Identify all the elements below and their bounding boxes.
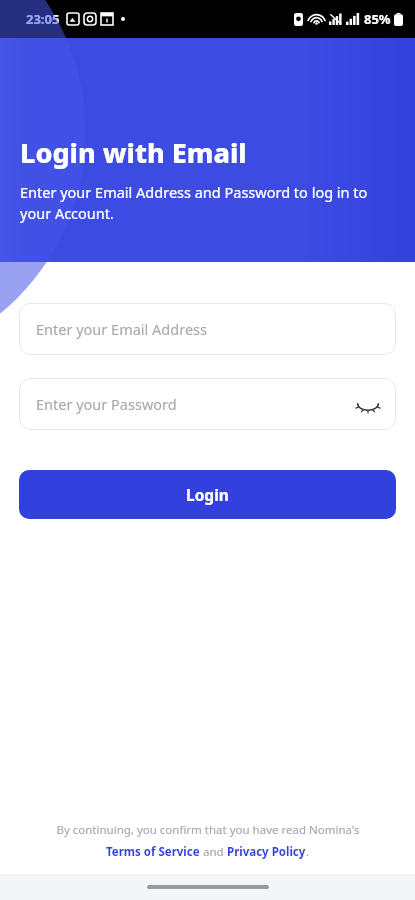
staticText: Privacy Policy (227, 844, 306, 860)
button[interactable]: Privacy Policy (227, 844, 306, 860)
staticText: By continuing, you confirm that you have… (56, 822, 360, 838)
button[interactable]: Enter your Password (19, 378, 396, 430)
button[interactable]: Terms of Service (106, 844, 200, 860)
button[interactable]: Login (19, 470, 396, 519)
staticText: Login with Email (20, 134, 247, 171)
button[interactable]: Enter your Email Address (19, 303, 396, 355)
staticText: Enter your Password (36, 394, 177, 414)
button[interactable]: Show password (354, 390, 382, 418)
staticText: . (306, 844, 310, 860)
staticText: Enter your Email Address (36, 319, 207, 339)
staticText: and (200, 844, 227, 860)
staticText: 23:05 (26, 10, 60, 28)
staticText: Login (186, 484, 229, 505)
staticText: 85% (364, 10, 391, 28)
staticText: Terms of Service (106, 844, 200, 860)
staticText: Enter your Email Address and Password to… (20, 182, 401, 224)
